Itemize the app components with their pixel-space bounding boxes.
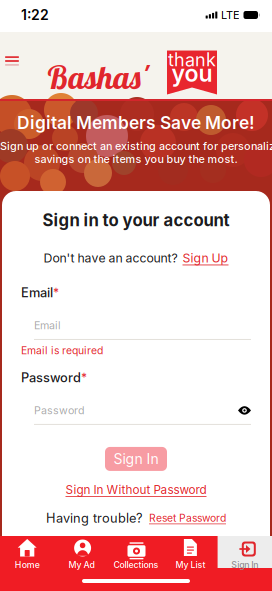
button[interactable]: Sign In — [218, 536, 272, 568]
staticText: Sign In — [113, 451, 158, 467]
staticText: 1:22 — [21, 7, 49, 23]
staticText: Sign In Without Password — [65, 483, 206, 496]
button[interactable]: My Ad — [54, 536, 109, 568]
button[interactable]: Reset Password — [149, 512, 226, 524]
staticText: Having trouble? — [46, 511, 143, 525]
staticText: My Ad — [69, 560, 95, 570]
staticText: Sign in to your account — [42, 210, 229, 230]
button[interactable]: Thank You rewards — [167, 50, 217, 94]
staticText: Don't have an account? — [43, 251, 177, 265]
staticText: LTE — [221, 9, 240, 21]
staticText: Home — [15, 560, 40, 570]
staticText: Password — [34, 404, 85, 417]
staticText: Reset Password — [149, 512, 226, 524]
staticText: Sign up or connect an existing account f… — [0, 140, 272, 152]
button[interactable]: Collections — [109, 536, 163, 568]
staticText: Sign In — [231, 560, 258, 570]
staticText: Email — [34, 319, 61, 332]
staticText: Collections — [113, 560, 158, 570]
staticText: you — [171, 62, 212, 84]
button[interactable]: Sign In — [105, 447, 167, 471]
button[interactable]: Sign Up — [182, 251, 228, 265]
button[interactable]: Sign In Without Password — [65, 483, 206, 496]
button[interactable]: Home — [0, 536, 54, 568]
staticText: * — [81, 371, 87, 384]
staticText: savings on the items you buy the most. — [34, 153, 237, 165]
staticText: thank — [168, 51, 216, 68]
staticText: Password — [21, 370, 81, 385]
staticText: Sign Up — [182, 251, 228, 265]
staticText: Digital Members Save More! — [17, 113, 255, 132]
staticText: Email is required — [21, 344, 103, 357]
staticText: * — [53, 286, 59, 299]
button[interactable]: Menu — [0, 46, 27, 76]
staticText: Email — [21, 285, 53, 300]
button[interactable]: My List — [163, 536, 218, 568]
staticText: My List — [175, 560, 205, 570]
button[interactable]: Show password — [238, 405, 251, 415]
staticText: Bashas' — [46, 57, 148, 97]
